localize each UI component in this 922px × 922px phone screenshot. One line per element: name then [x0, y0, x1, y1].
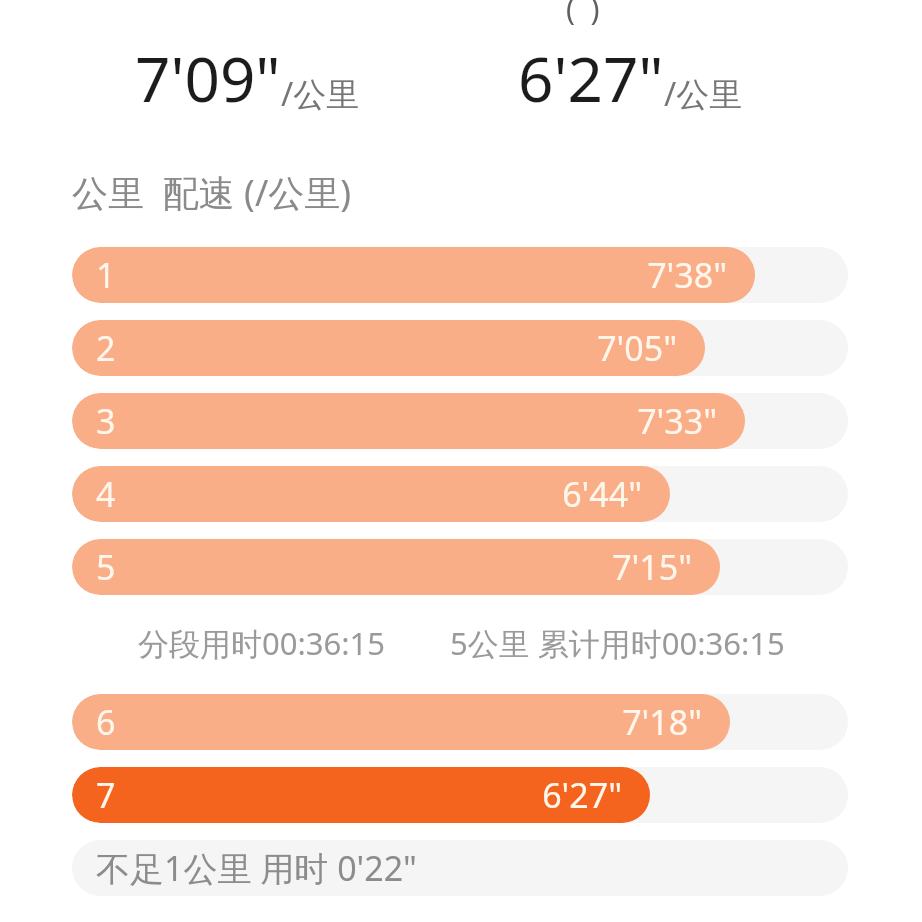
button[interactable]: 7 — [72, 767, 848, 823]
staticText: 6 — [96, 699, 116, 745]
staticText: 不足1公里 用时 0'22" — [96, 845, 417, 891]
button[interactable]: 6'27" — [518, 36, 743, 120]
staticText: 7'33" — [637, 398, 717, 444]
button[interactable]: 不足1公里 用时 0'22" — [72, 840, 848, 896]
button[interactable]: 3 — [72, 393, 848, 449]
staticText: 4 — [96, 471, 116, 517]
staticText: 3 — [96, 398, 116, 444]
staticText: 2 — [96, 325, 116, 371]
staticText: 6'27" — [542, 772, 622, 818]
staticText: 分段用时00:36:15 — [138, 622, 386, 664]
staticText: 6'44" — [562, 471, 642, 517]
staticText: 7'15" — [612, 544, 692, 590]
staticText: 公里 配速 (/公里) — [72, 168, 352, 217]
staticText: 7 — [96, 772, 116, 818]
staticText: 7'18" — [622, 699, 702, 745]
staticText: ( ) — [566, 0, 600, 29]
button[interactable]: 4 — [72, 466, 848, 522]
button[interactable]: 5 — [72, 539, 848, 595]
staticText: 1 — [96, 252, 116, 298]
button[interactable]: 1 — [72, 247, 848, 303]
staticText: 7'38" — [647, 252, 727, 298]
button[interactable]: 2 — [72, 320, 848, 376]
staticText: /公里 — [281, 71, 360, 116]
button[interactable]: 7'09" — [135, 36, 360, 120]
staticText: 7'05" — [597, 325, 677, 371]
staticText: 5 — [96, 544, 116, 590]
staticText: /公里 — [664, 71, 743, 116]
staticText: 5公里 累计用时00:36:15 — [450, 622, 785, 664]
staticText: 7'09" — [135, 36, 281, 120]
staticText: 6'27" — [518, 36, 664, 120]
button[interactable]: 6 — [72, 694, 848, 750]
